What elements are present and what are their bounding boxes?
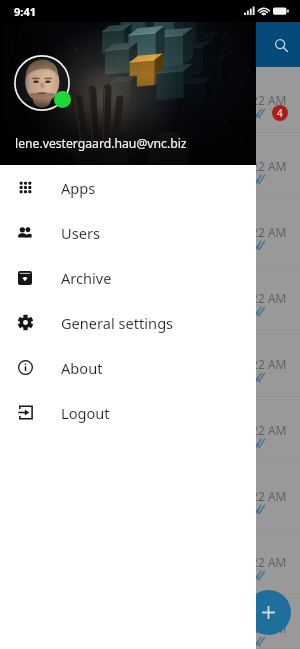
- staticText: Message preview: [67, 102, 164, 118]
- button[interactable]: Contact: [0, 331, 300, 397]
- staticText: Contact: [67, 212, 116, 230]
- staticText: Contact: [67, 278, 116, 296]
- staticText: Archive: [61, 268, 112, 288]
- staticText: 9:22 AM: [241, 488, 287, 504]
- button[interactable]: Contact: [0, 529, 300, 595]
- button[interactable]: Contact: [0, 265, 300, 331]
- staticText: 9:22 AM: [241, 620, 287, 636]
- button[interactable]: Contact: [0, 67, 300, 133]
- staticText: Logout: [61, 403, 110, 423]
- staticText: Users: [61, 223, 100, 243]
- staticText: General settings: [61, 313, 174, 333]
- staticText: About: [61, 358, 103, 378]
- staticText: Contact: [67, 146, 116, 164]
- staticText: lene.vestergaard.hau@vnc.biz: [15, 135, 187, 152]
- button[interactable]: Archive: [0, 255, 256, 300]
- button[interactable]: Search: [265, 29, 297, 61]
- staticText: 9:22 AM: [241, 356, 287, 372]
- button[interactable]: About: [0, 345, 256, 390]
- button[interactable]: Contact: [0, 199, 300, 265]
- staticText: 9:22 AM: [241, 554, 287, 570]
- button[interactable]: Apps: [0, 165, 256, 210]
- staticText: 4: [277, 106, 283, 120]
- button[interactable]: Contact: [0, 463, 300, 529]
- staticText: 9:22 AM: [241, 224, 287, 240]
- staticText: 9:22 AM: [241, 290, 287, 306]
- staticText: 9:41: [14, 4, 36, 19]
- staticText: 9:22 AM: [241, 422, 287, 438]
- button[interactable]: Contact: [0, 397, 300, 463]
- button[interactable]: Logout: [0, 390, 256, 435]
- staticText: Message preview: [67, 366, 164, 382]
- button[interactable]: General settings: [0, 300, 256, 345]
- staticText: Contact: [67, 410, 116, 428]
- staticText: 9:22 AM: [241, 92, 287, 108]
- button[interactable]: Contact: [0, 595, 300, 649]
- button[interactable]: Contact: [0, 133, 300, 199]
- staticText: Apps: [61, 178, 96, 198]
- staticText: Message preview: [67, 234, 164, 250]
- button[interactable]: New chat: [246, 590, 291, 635]
- button[interactable]: Users: [0, 210, 256, 255]
- staticText: Contact: [67, 80, 116, 98]
- staticText: 9:22 AM: [241, 158, 287, 174]
